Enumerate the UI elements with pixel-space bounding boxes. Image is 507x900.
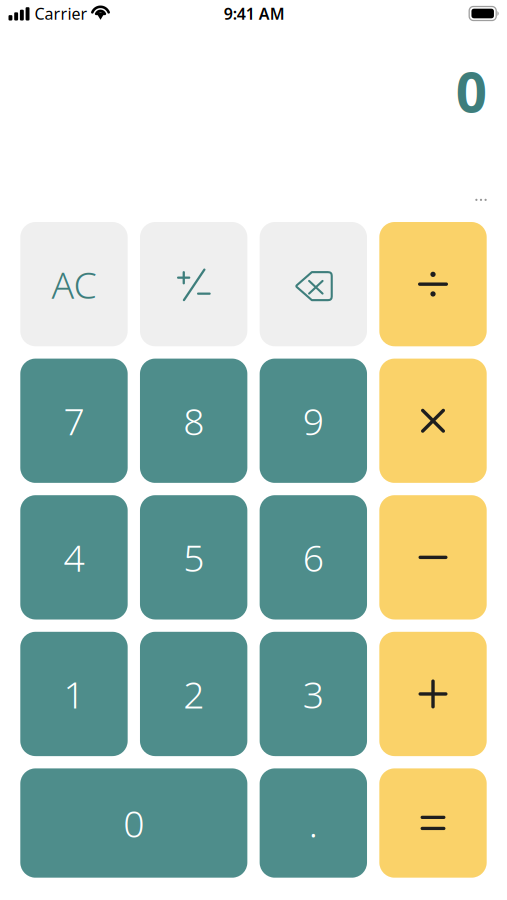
button[interactable]: AC (20, 222, 128, 346)
staticText: 0 (123, 798, 144, 848)
button[interactable]: Delete (260, 222, 367, 346)
button[interactable]: Plus minus (140, 222, 247, 346)
button[interactable]: 9 (260, 359, 367, 483)
button[interactable]: 0 (20, 768, 247, 878)
button[interactable]: Divide (379, 222, 487, 346)
button[interactable]: . (260, 768, 367, 878)
button[interactable]: Add (379, 632, 487, 756)
button[interactable]: 5 (140, 495, 247, 619)
staticText: 4 (63, 533, 84, 582)
staticText: 3 (303, 669, 324, 719)
staticText: 8 (183, 396, 204, 446)
button[interactable]: Equals (379, 768, 487, 878)
button[interactable]: 6 (260, 495, 367, 619)
staticText: 9 (303, 396, 324, 446)
staticText: 2 (183, 669, 204, 719)
button[interactable]: 1 (20, 632, 128, 756)
staticText: 5 (183, 533, 204, 582)
staticText: 6 (303, 533, 324, 582)
button[interactable]: 3 (260, 632, 367, 756)
button[interactable]: 7 (20, 359, 128, 483)
staticText: AC (51, 259, 96, 309)
staticText: 1 (63, 669, 84, 719)
button[interactable]: 8 (140, 359, 247, 483)
staticText: 7 (63, 396, 84, 446)
button[interactable]: Multiply (379, 359, 487, 483)
staticText: 0 (456, 55, 487, 128)
staticText: 9:41 AM (224, 3, 285, 24)
staticText: Carrier (34, 3, 87, 24)
button[interactable]: 2 (140, 632, 247, 756)
staticText: . (309, 798, 318, 848)
button[interactable]: 4 (20, 495, 128, 619)
button[interactable]: Subtract (379, 495, 487, 619)
